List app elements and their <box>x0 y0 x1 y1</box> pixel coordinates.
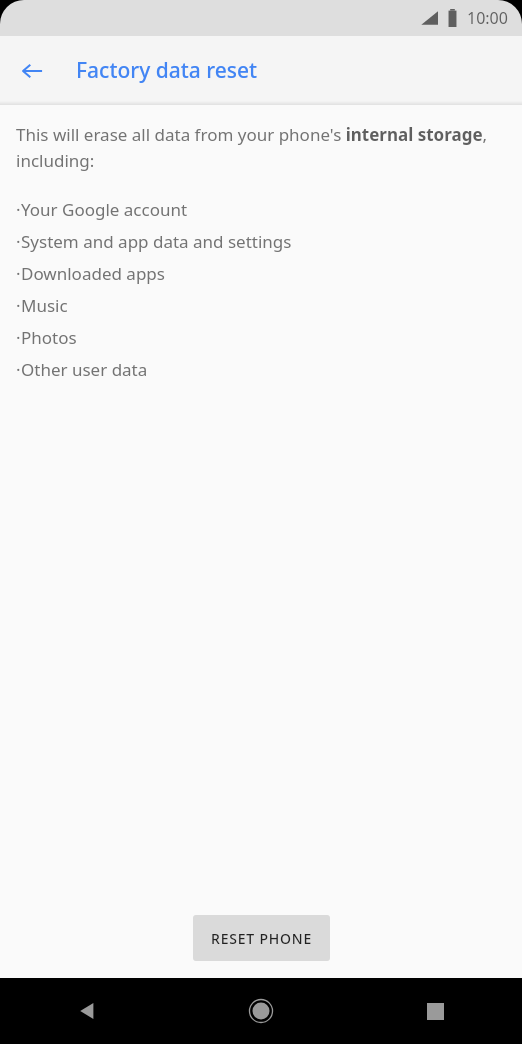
staticText: RESET PHONE <box>211 929 313 948</box>
staticText: · <box>16 294 21 317</box>
button[interactable]: Navigate up <box>8 47 56 95</box>
staticText: · <box>16 198 21 221</box>
button[interactable]: Recent apps <box>348 978 522 1044</box>
staticText: · <box>16 262 21 285</box>
staticText: Your Google account <box>21 198 188 221</box>
staticText: · <box>16 326 21 349</box>
staticText: Music <box>21 294 68 317</box>
staticText: 10:00 <box>467 7 508 29</box>
staticText: · <box>16 358 21 381</box>
button[interactable]: Back <box>0 978 174 1044</box>
button[interactable]: Home <box>174 978 348 1044</box>
staticText: System and app data and settings <box>21 230 292 253</box>
staticText: Other user data <box>21 358 148 381</box>
staticText: This will erase all data from your phone… <box>16 123 506 172</box>
staticText: Photos <box>21 326 77 349</box>
staticText: · <box>16 230 21 253</box>
staticText: Downloaded apps <box>21 262 165 285</box>
staticText: Factory data reset <box>76 56 258 85</box>
button[interactable]: RESET PHONE <box>193 915 330 961</box>
